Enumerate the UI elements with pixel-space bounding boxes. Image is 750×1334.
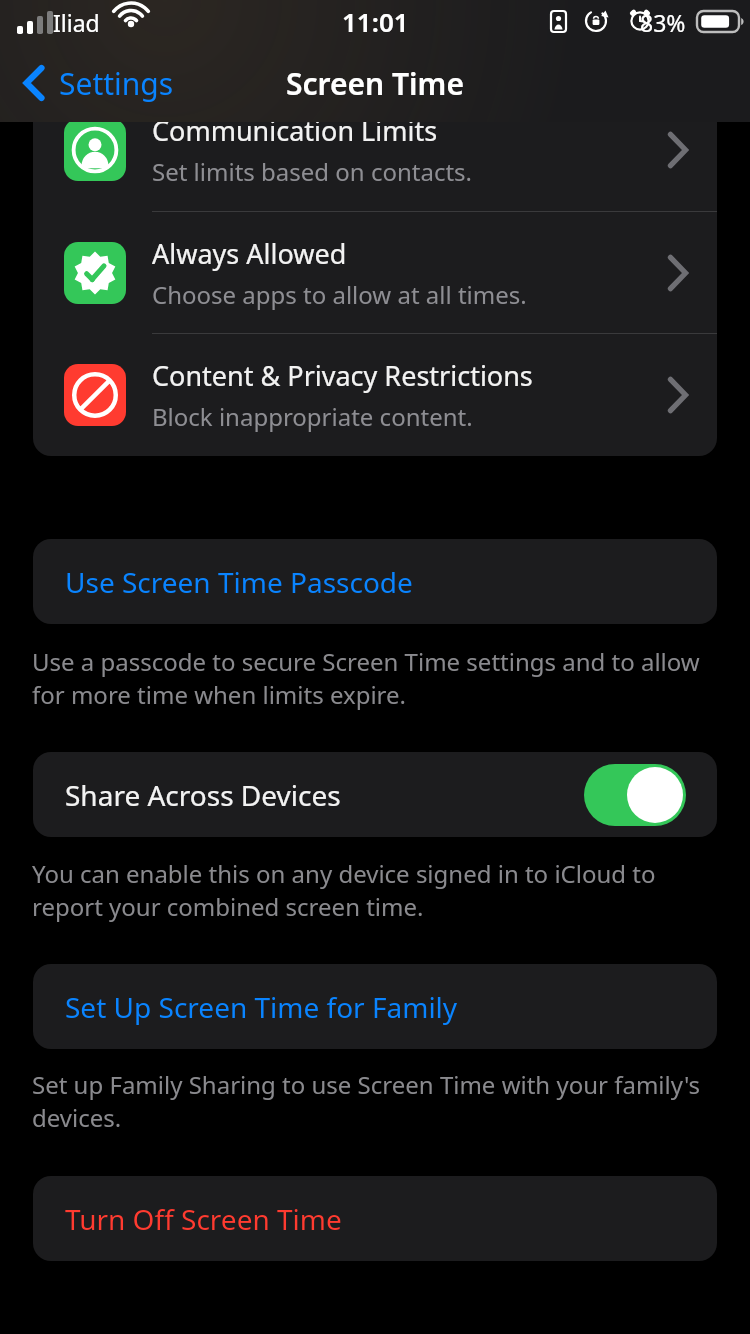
staticText: Communication Limits	[152, 112, 438, 149]
staticText: Set Up Screen Time for Family	[65, 988, 458, 1026]
staticText: 11:01	[342, 4, 409, 39]
staticText: Set up Family Sharing to use Screen Time…	[32, 1068, 724, 1134]
staticText: Use a passcode to secure Screen Time set…	[32, 645, 724, 711]
staticText: Set limits based on contacts.	[152, 155, 472, 188]
button[interactable]: Turn Off Screen Time	[33, 1176, 717, 1261]
staticText: Content & Privacy Restrictions	[152, 357, 533, 394]
button[interactable]: Share Across Devices	[33, 752, 717, 837]
staticText: Block inappropriate content.	[152, 400, 473, 433]
staticText: Always Allowed	[152, 235, 347, 272]
staticText: Share Across Devices	[65, 776, 584, 814]
staticText: You can enable this on any device signed…	[32, 857, 724, 923]
staticText: Turn Off Screen Time	[65, 1200, 342, 1238]
staticText: 83%	[640, 7, 686, 38]
staticText: Settings	[59, 63, 174, 104]
button[interactable]: Always Allowed	[33, 212, 717, 333]
button[interactable]: Use Screen Time Passcode	[33, 539, 717, 624]
staticText: Iliad	[53, 7, 100, 38]
button[interactable]: Share Across Devices toggle	[584, 764, 686, 826]
button[interactable]: Set Up Screen Time for Family	[33, 964, 717, 1049]
staticText: Choose apps to allow at all times.	[152, 278, 527, 311]
button[interactable]: Content & Privacy Restrictions	[33, 334, 717, 456]
staticText: Screen Time	[286, 63, 464, 104]
button[interactable]: Settings	[0, 44, 174, 122]
staticText: Use Screen Time Passcode	[65, 563, 413, 601]
button[interactable]: Communication Limits	[33, 89, 717, 211]
